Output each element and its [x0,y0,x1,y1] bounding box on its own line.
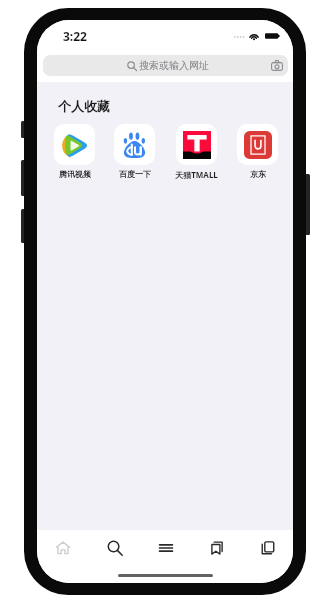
staticText: 搜索或输入网址 [139,59,209,72]
staticText: 京东 [250,169,266,179]
button[interactable]: Bookmarks [191,530,242,566]
button[interactable]: Tabs [242,530,293,566]
button[interactable]: 京东 [237,124,278,179]
staticText: 天猫TMALL [175,169,218,180]
button[interactable]: Menu [140,530,191,566]
button[interactable]: 腾讯视频 [54,124,95,179]
staticText: 个人收藏 [58,98,110,114]
button[interactable]: Camera search [266,55,288,76]
staticText: 百度一下 [119,169,151,179]
button[interactable]: Search [89,530,140,566]
button[interactable]: 搜索或输入网址 [43,55,288,76]
button[interactable]: 百度一下 [114,124,155,179]
staticText: 3:22 [63,28,87,44]
button[interactable]: Home [37,530,89,566]
button[interactable]: 天猫TMALL [175,124,218,180]
staticText: 腾讯视频 [59,169,91,179]
